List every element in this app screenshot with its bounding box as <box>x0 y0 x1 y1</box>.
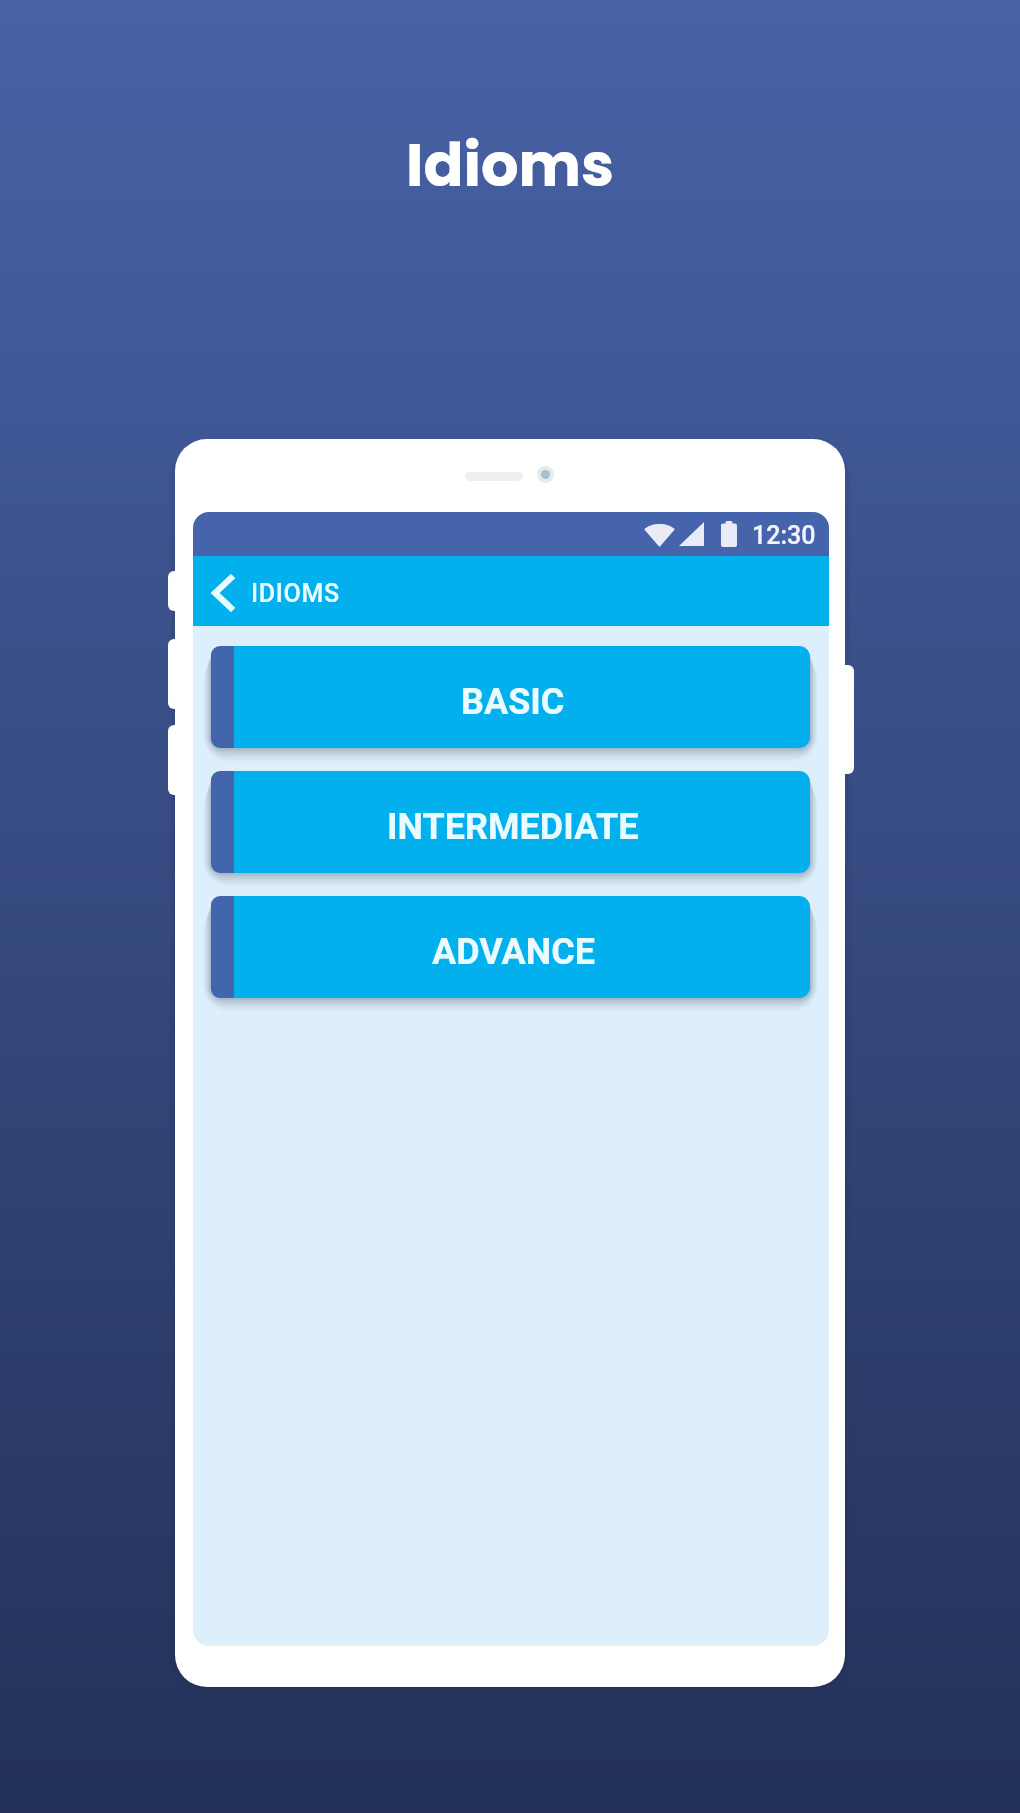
button[interactable]: Back <box>201 569 245 613</box>
button[interactable]: Back <box>193 556 829 626</box>
staticText: Idioms <box>406 124 614 207</box>
button[interactable]: INTERMEDIATE <box>193 771 829 873</box>
staticText: BASIC <box>461 681 565 723</box>
button[interactable]: ADVANCE <box>193 896 829 998</box>
staticText: IDIOMS <box>251 579 340 608</box>
staticText: 12:30 <box>752 521 816 550</box>
staticText: INTERMEDIATE <box>387 806 639 848</box>
button[interactable]: BASIC <box>193 646 829 748</box>
staticText: ADVANCE <box>432 931 595 973</box>
